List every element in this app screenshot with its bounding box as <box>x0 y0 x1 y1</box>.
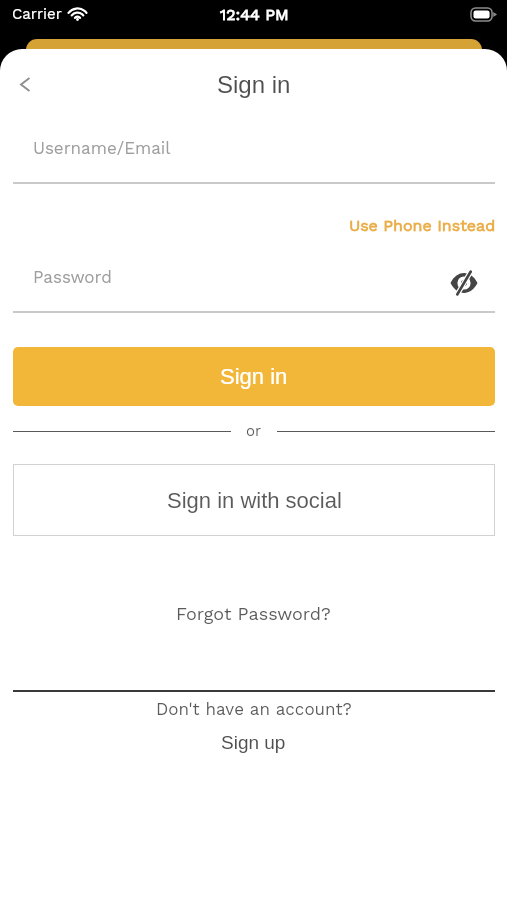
staticText: Don't have an account? <box>156 699 352 719</box>
button[interactable]: Use Phone Instead <box>349 216 496 235</box>
staticText: Username/Email <box>33 138 171 158</box>
staticText: Carrier <box>12 5 62 23</box>
staticText: Sign in with social <box>167 488 342 513</box>
button[interactable]: Sign in with social <box>13 464 495 536</box>
button[interactable]: Sign up <box>221 732 286 753</box>
button[interactable]: Show password <box>447 266 481 300</box>
staticText: 12:44 PM <box>220 5 289 24</box>
button[interactable]: Sign in <box>13 347 495 406</box>
staticText: Sign in <box>220 364 288 389</box>
button[interactable]: Back <box>4 62 46 106</box>
staticText: Password <box>33 267 112 287</box>
button[interactable]: Forgot Password? <box>176 603 331 624</box>
staticText: or <box>246 422 262 440</box>
staticText: Sign in <box>217 71 291 98</box>
button[interactable]: Username/Email <box>0 126 507 170</box>
